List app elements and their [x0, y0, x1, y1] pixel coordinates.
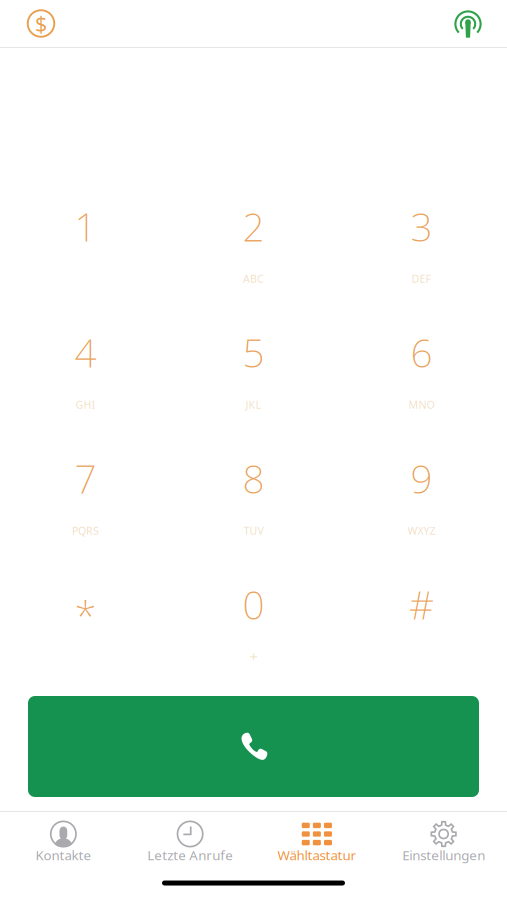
staticText: # [409, 579, 434, 630]
staticText: 0 [242, 579, 264, 630]
staticText: 1 [74, 201, 96, 252]
staticText: MNO [408, 397, 434, 412]
staticText: 6 [410, 327, 432, 378]
staticText: * [74, 589, 96, 642]
staticText: Einstellungen [402, 846, 485, 864]
button[interactable]: 1 [20, 202, 150, 292]
button[interactable]: 4 [20, 328, 150, 418]
button[interactable]: * [20, 580, 150, 670]
button[interactable]: 6 [356, 328, 486, 418]
button[interactable]: 5 [188, 328, 318, 418]
staticText: JKL [245, 397, 261, 412]
button[interactable]: Guthaben [17, 0, 65, 47]
button[interactable]: Einstellungen [380, 812, 507, 866]
button[interactable]: Kontakte [0, 812, 127, 866]
staticText: 7 [74, 453, 96, 504]
staticText: 4 [74, 327, 96, 378]
staticText: Letzte Anrufe [147, 846, 233, 864]
staticText: DEF [411, 271, 431, 286]
button[interactable]: # [356, 580, 486, 670]
button[interactable]: 8 [188, 454, 318, 544]
staticText: 8 [242, 453, 264, 504]
staticText: 3 [410, 201, 432, 252]
button[interactable]: 2 [188, 202, 318, 292]
button[interactable]: 7 [20, 454, 150, 544]
staticText: TUV [243, 523, 263, 538]
button[interactable]: 0 [188, 580, 318, 670]
staticText: Kontakte [35, 846, 91, 864]
button[interactable]: Anrufen [0, 696, 507, 797]
staticText: ABC [243, 271, 264, 286]
staticText: 5 [242, 327, 264, 378]
button[interactable]: 9 [356, 454, 486, 544]
staticText: 2 [242, 201, 264, 252]
staticText: GHI [75, 397, 95, 412]
button[interactable]: Letzte Anrufe [127, 812, 254, 866]
button[interactable]: 3 [356, 202, 486, 292]
button[interactable]: Wähltastatur [253, 812, 380, 866]
staticText: Wähltastatur [277, 846, 356, 864]
staticText: WXYZ [407, 523, 435, 538]
staticText: PQRS [72, 523, 99, 538]
staticText: $ [35, 9, 47, 38]
button[interactable]: Verbindung [444, 0, 492, 47]
staticText: 9 [410, 453, 432, 504]
staticText: + [249, 647, 257, 666]
